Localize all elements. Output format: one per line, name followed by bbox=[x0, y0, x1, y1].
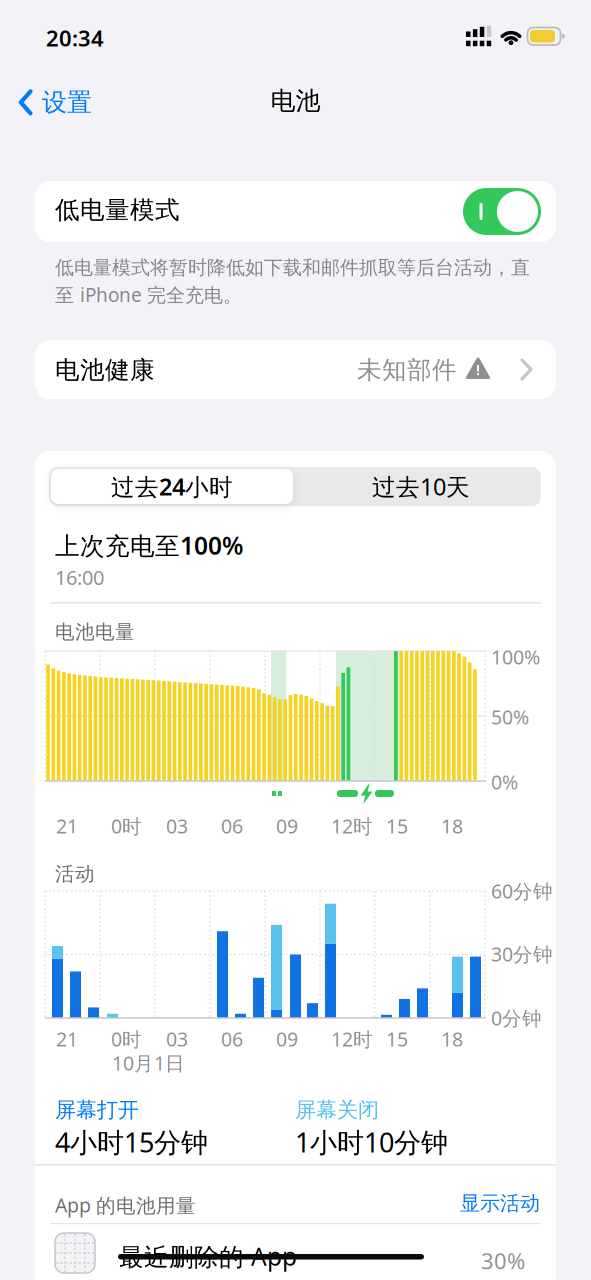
staticText: 0% bbox=[491, 769, 518, 795]
staticText: 设置 bbox=[42, 87, 92, 118]
staticText: 18 bbox=[441, 1026, 463, 1052]
staticText: 15 bbox=[386, 813, 408, 839]
staticText: 0时 bbox=[111, 813, 142, 839]
button[interactable]: 过去24小时 bbox=[51, 469, 293, 504]
staticText: 21 bbox=[56, 1026, 78, 1052]
staticText: 过去24小时 bbox=[111, 471, 233, 502]
staticText: 至 iPhone 完全充电。 bbox=[55, 282, 242, 307]
staticText: 06 bbox=[221, 813, 243, 839]
staticText: 屏幕打开 bbox=[55, 1097, 139, 1123]
staticText: 03 bbox=[166, 813, 188, 839]
staticText: 屏幕关闭 bbox=[295, 1097, 379, 1123]
staticText: 60分钟 bbox=[491, 878, 553, 904]
staticText: 09 bbox=[276, 813, 298, 839]
staticText: 电池健康 bbox=[55, 355, 155, 385]
staticText: 显示活动 bbox=[460, 1191, 540, 1216]
button[interactable]: 电池健康 bbox=[35, 340, 556, 399]
staticText: 16:00 bbox=[55, 564, 104, 591]
button[interactable]: 过去10天 bbox=[321, 469, 521, 504]
staticText: 电池电量 bbox=[55, 620, 135, 644]
staticText: 4小时15分钟 bbox=[55, 1124, 208, 1160]
staticText: 低电量模式将暂时降低如下载和邮件抓取等后台活动，直 bbox=[55, 256, 530, 279]
button[interactable]: 低电量模式 bbox=[463, 188, 541, 235]
staticText: 50% bbox=[491, 704, 529, 730]
staticText: 活动 bbox=[55, 862, 95, 886]
staticText: 0分钟 bbox=[491, 1005, 542, 1031]
staticText: 12时 bbox=[331, 813, 373, 839]
button[interactable]: 最近删除的 App bbox=[35, 1224, 556, 1280]
staticText: 18 bbox=[441, 813, 463, 839]
staticText: 电池 bbox=[270, 86, 320, 116]
staticText: 上次充电至100% bbox=[55, 529, 243, 561]
button[interactable]: 显示活动 bbox=[460, 1191, 540, 1216]
staticText: App 的电池用量 bbox=[55, 1192, 196, 1218]
staticText: 21 bbox=[56, 813, 78, 839]
staticText: 低电量模式 bbox=[55, 195, 180, 225]
staticText: 10月1日 bbox=[112, 1050, 185, 1076]
staticText: 06 bbox=[221, 1026, 243, 1052]
button[interactable]: 设置 bbox=[19, 87, 92, 118]
staticText: 0时 bbox=[111, 1026, 142, 1052]
staticText: 未知部件 bbox=[357, 355, 457, 385]
staticText: 03 bbox=[166, 1026, 188, 1052]
staticText: 过去10天 bbox=[372, 471, 470, 502]
staticText: 100% bbox=[491, 644, 540, 670]
staticText: 12时 bbox=[331, 1026, 373, 1052]
staticText: 1小时10分钟 bbox=[295, 1124, 448, 1160]
staticText: 最近删除的 App bbox=[119, 1240, 297, 1272]
staticText: 20:34 bbox=[46, 23, 104, 53]
staticText: 30% bbox=[481, 1246, 525, 1275]
staticText: 30分钟 bbox=[491, 941, 553, 967]
staticText: 15 bbox=[386, 1026, 408, 1052]
staticText: 09 bbox=[276, 1026, 298, 1052]
